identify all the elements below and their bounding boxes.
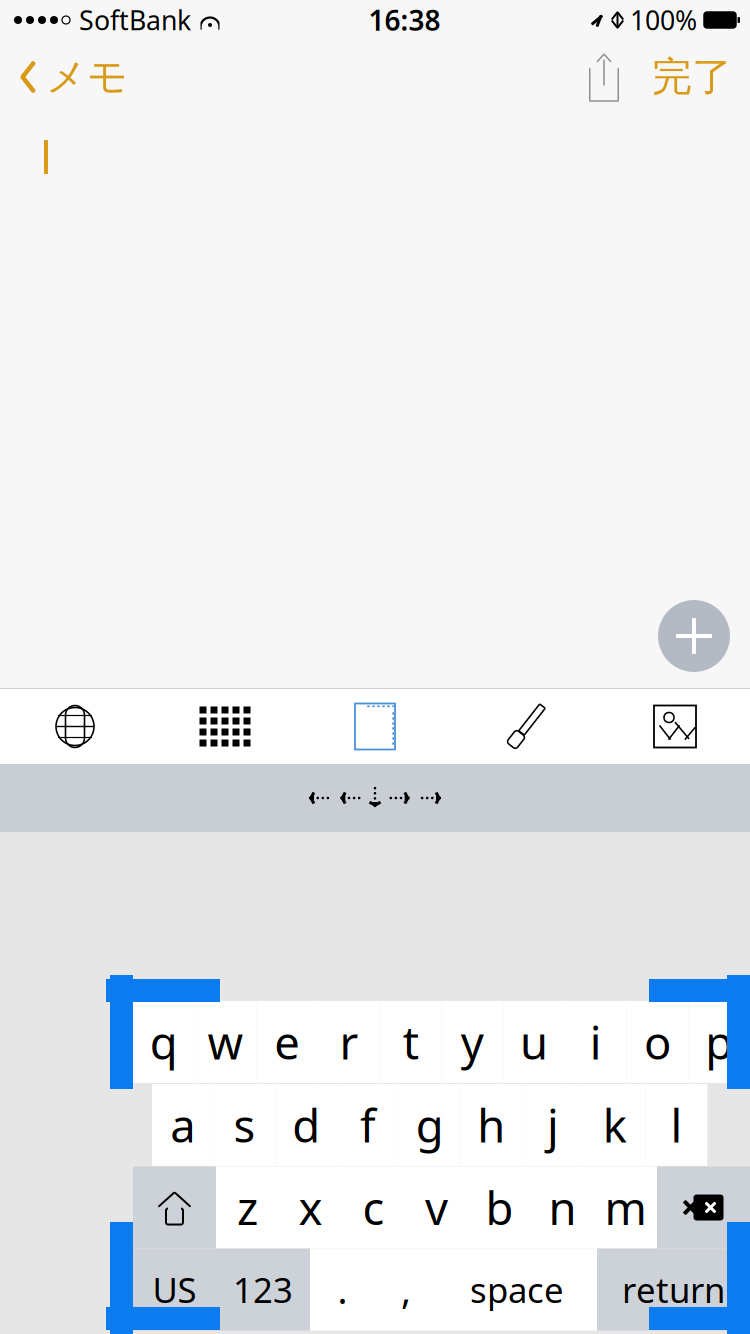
button[interactable]: t xyxy=(380,1001,441,1083)
staticText: 100% xyxy=(630,2,697,38)
button[interactable]: 123 xyxy=(216,1248,310,1330)
button[interactable]: 完了 xyxy=(634,44,750,109)
staticText: 完了 xyxy=(652,52,732,101)
button[interactable]: i xyxy=(565,1001,627,1083)
staticText: メモ xyxy=(46,52,128,101)
staticText: l xyxy=(670,1095,682,1155)
staticText: i xyxy=(590,1012,602,1072)
staticText: x xyxy=(298,1177,322,1238)
staticText: . xyxy=(337,1265,347,1314)
button[interactable]: k xyxy=(584,1084,646,1166)
button[interactable]: . xyxy=(310,1248,375,1330)
staticText: p xyxy=(705,1012,733,1072)
button[interactable]: m xyxy=(594,1166,657,1248)
button[interactable]: e xyxy=(256,1001,318,1083)
staticText: m xyxy=(604,1177,646,1238)
button[interactable]: Shift xyxy=(133,1166,216,1248)
staticText: v xyxy=(425,1177,448,1238)
staticText: q xyxy=(150,1012,178,1072)
button[interactable]: , xyxy=(375,1248,437,1330)
button[interactable]: c xyxy=(342,1166,405,1248)
staticText: e xyxy=(274,1012,300,1072)
staticText: return xyxy=(622,1266,725,1312)
button[interactable]: g xyxy=(399,1084,460,1166)
staticText: , xyxy=(401,1265,411,1314)
button[interactable]: y xyxy=(441,1001,503,1083)
button[interactable]: l xyxy=(646,1084,707,1166)
staticText: o xyxy=(644,1012,671,1072)
staticText: j xyxy=(547,1095,559,1155)
staticText: c xyxy=(362,1177,384,1238)
staticText: US xyxy=(152,1266,196,1312)
button[interactable]: p xyxy=(688,1001,750,1083)
button[interactable]: s xyxy=(214,1084,275,1166)
button[interactable]: Insert photo xyxy=(600,703,750,749)
button[interactable]: Share xyxy=(574,53,634,101)
staticText: w xyxy=(207,1012,243,1072)
staticText: n xyxy=(548,1177,576,1238)
staticText: z xyxy=(237,1177,258,1238)
button[interactable]: a xyxy=(152,1084,214,1166)
staticText: f xyxy=(360,1095,376,1155)
button[interactable]: v xyxy=(405,1166,468,1248)
button[interactable]: メモ xyxy=(0,44,128,109)
staticText: b xyxy=(485,1177,513,1238)
button[interactable]: US xyxy=(133,1248,216,1330)
staticText: g xyxy=(416,1095,444,1155)
button[interactable]: q xyxy=(133,1001,195,1083)
staticText: SoftBank xyxy=(79,2,191,38)
button[interactable]: u xyxy=(503,1001,565,1083)
staticText: s xyxy=(233,1095,255,1155)
staticText: h xyxy=(477,1095,505,1155)
button[interactable]: j xyxy=(522,1084,584,1166)
button[interactable]: x xyxy=(279,1166,342,1248)
button[interactable]: Delete xyxy=(657,1166,750,1248)
button[interactable]: r xyxy=(318,1001,380,1083)
button[interactable]: Draw xyxy=(450,702,600,750)
staticText: 16:38 xyxy=(368,1,440,39)
staticText: u xyxy=(520,1012,548,1072)
staticText: r xyxy=(339,1012,358,1072)
staticText: k xyxy=(603,1095,627,1155)
button[interactable]: space xyxy=(437,1248,597,1330)
button[interactable]: Add xyxy=(651,593,737,679)
button[interactable]: o xyxy=(627,1001,688,1083)
button[interactable]: Select area xyxy=(300,702,450,750)
button[interactable]: w xyxy=(195,1001,256,1083)
staticText: t xyxy=(403,1012,419,1072)
staticText: space xyxy=(470,1266,564,1312)
button[interactable]: Language xyxy=(0,704,150,748)
staticText: d xyxy=(292,1095,320,1155)
button[interactable]: return xyxy=(597,1248,750,1330)
button[interactable]: b xyxy=(468,1166,531,1248)
button[interactable]: z xyxy=(216,1166,279,1248)
staticText: y xyxy=(461,1012,484,1072)
staticText: a xyxy=(170,1095,195,1155)
button[interactable]: Grid xyxy=(150,706,300,746)
button[interactable]: d xyxy=(275,1084,337,1166)
button[interactable]: h xyxy=(460,1084,522,1166)
button[interactable]: f xyxy=(337,1084,399,1166)
button[interactable]: n xyxy=(531,1166,594,1248)
staticText: 123 xyxy=(233,1266,293,1312)
